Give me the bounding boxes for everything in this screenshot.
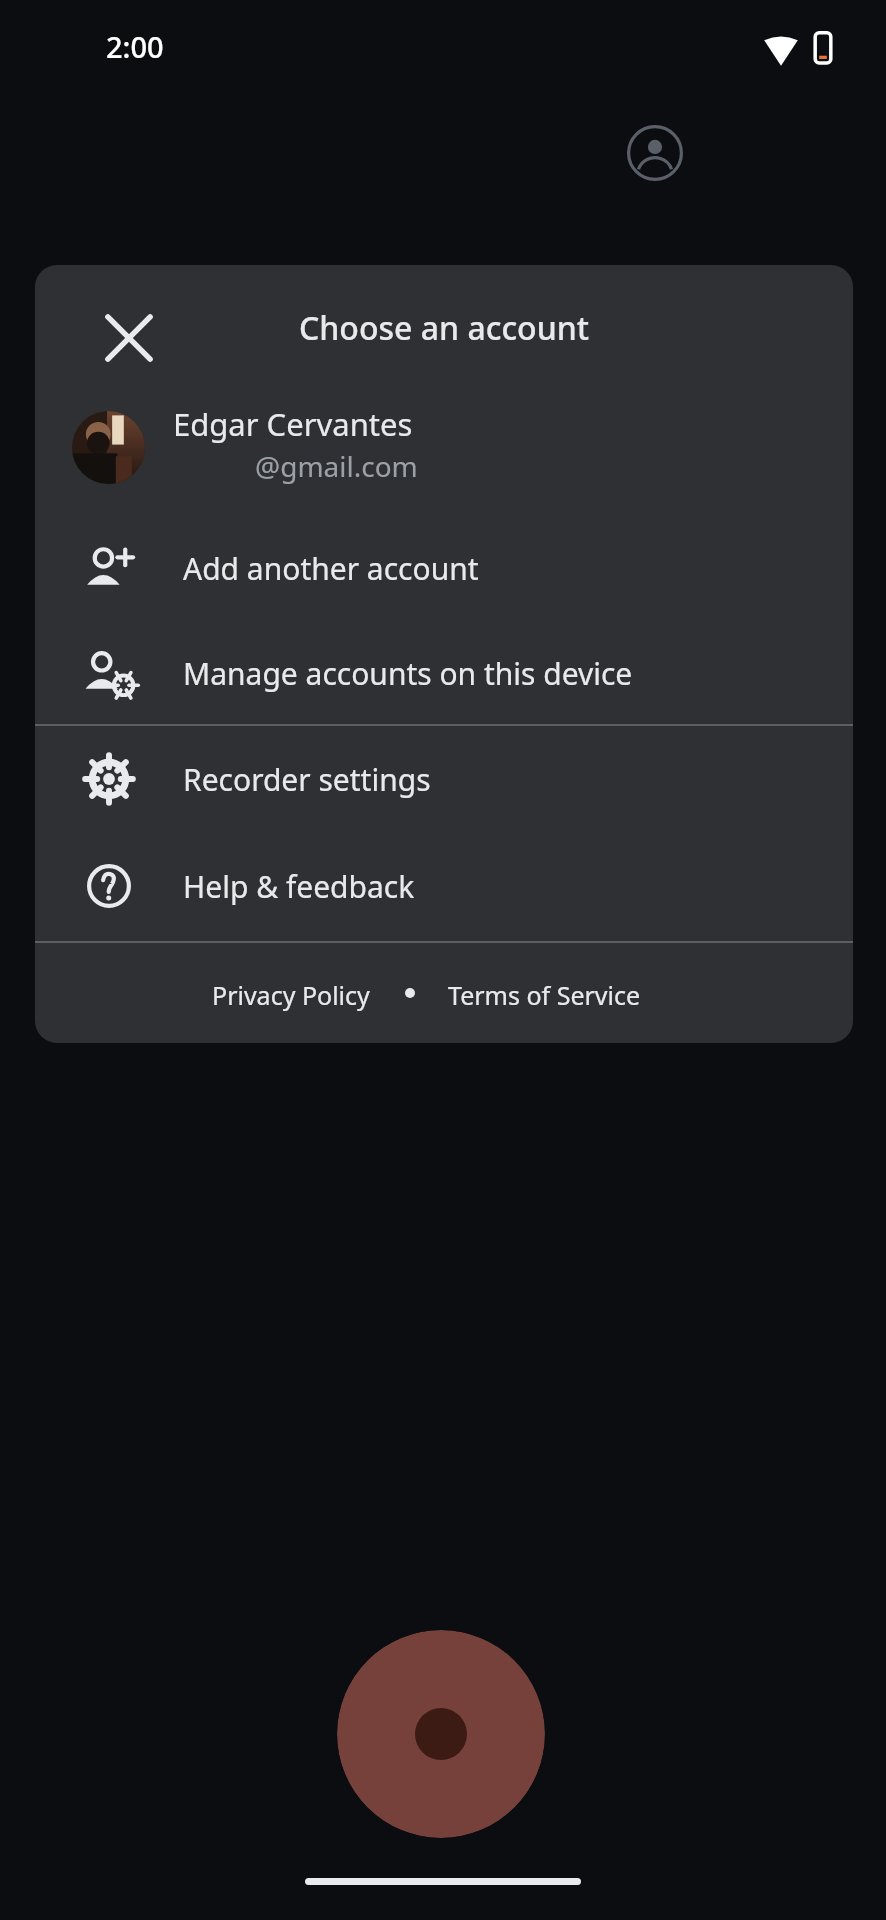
staticText: @gmail.com <box>255 447 418 485</box>
button[interactable]: Edgar Cervantes <box>35 395 853 500</box>
button[interactable]: Help & feedback <box>35 833 853 938</box>
button[interactable]: Add another account <box>35 515 853 620</box>
staticText: Recorder settings <box>183 759 431 800</box>
button[interactable]: Privacy Policy <box>205 965 373 1021</box>
button[interactable]: Close <box>85 294 173 382</box>
button[interactable]: Account <box>626 124 684 182</box>
staticText: Terms of Service <box>448 978 641 1012</box>
staticText: Privacy Policy <box>212 978 370 1012</box>
staticText: Help & feedback <box>183 866 415 907</box>
staticText: Choose an account <box>35 306 853 350</box>
staticText: Add another account <box>183 548 479 589</box>
button[interactable]: Record <box>337 1630 545 1838</box>
staticText: Manage accounts on this device <box>183 653 633 694</box>
staticText: Edgar Cervantes <box>173 403 413 445</box>
staticText: 2:00 <box>106 27 164 66</box>
button[interactable]: Recorder settings <box>35 726 853 831</box>
button[interactable]: Manage accounts on this device <box>35 620 853 725</box>
button[interactable]: Terms of Service <box>440 965 650 1021</box>
